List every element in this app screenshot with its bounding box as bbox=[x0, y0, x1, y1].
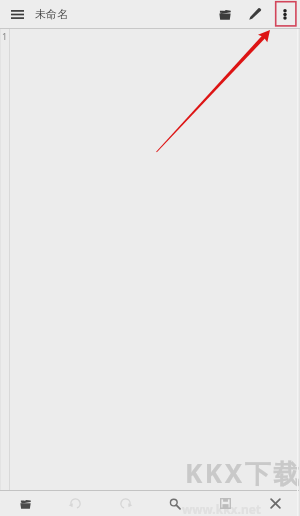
button[interactable]: Navigation menu bbox=[0, 0, 35, 28]
button[interactable]: Save bbox=[200, 491, 250, 516]
button[interactable]: Redo bbox=[100, 491, 150, 516]
staticText: 1 bbox=[2, 30, 8, 42]
staticText: www.kkx.net bbox=[182, 501, 262, 516]
button[interactable]: Undo bbox=[50, 491, 100, 516]
button[interactable]: Edit bbox=[240, 0, 270, 28]
button[interactable]: More options bbox=[270, 0, 300, 28]
button[interactable]: Search bbox=[150, 491, 200, 516]
staticText: 未命名 bbox=[35, 7, 68, 21]
button[interactable]: Close bbox=[250, 491, 300, 516]
button[interactable]: Open file bbox=[210, 0, 240, 28]
staticText: KKX下载 bbox=[185, 455, 300, 491]
button[interactable]: Files bbox=[0, 491, 50, 516]
